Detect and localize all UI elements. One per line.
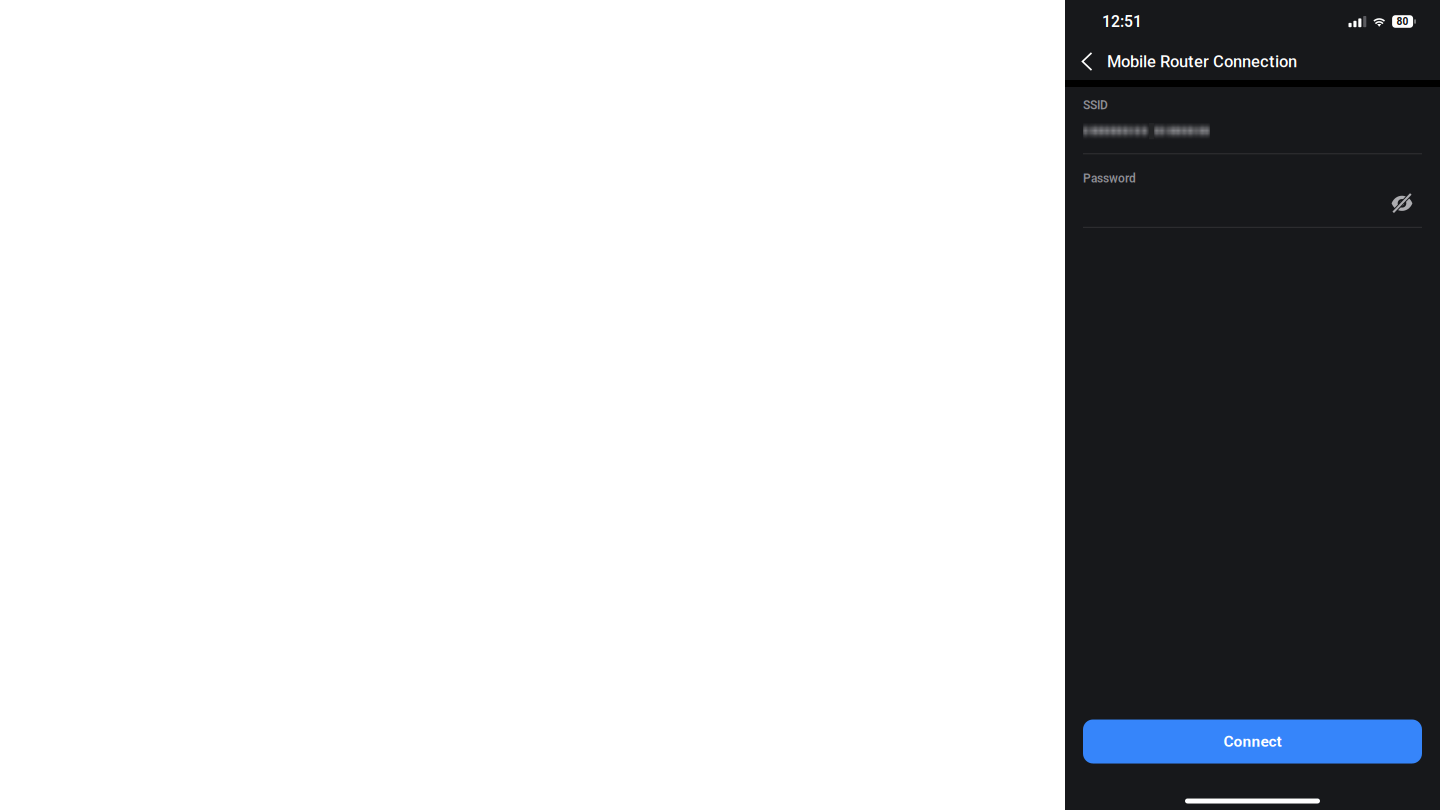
staticText: SSID: [1083, 98, 1108, 112]
staticText: 80: [1397, 16, 1409, 27]
staticText: Connect: [1223, 732, 1281, 750]
staticText: Mobile Router Connection: [1107, 52, 1297, 71]
button[interactable]: Show password: [1385, 186, 1419, 220]
button[interactable]: Back: [1074, 43, 1100, 80]
staticText: Password: [1083, 171, 1136, 185]
button[interactable]: Connect: [1083, 719, 1422, 763]
button[interactable]: SSID: [1083, 87, 1422, 154]
staticText: 12:51: [1102, 12, 1142, 31]
